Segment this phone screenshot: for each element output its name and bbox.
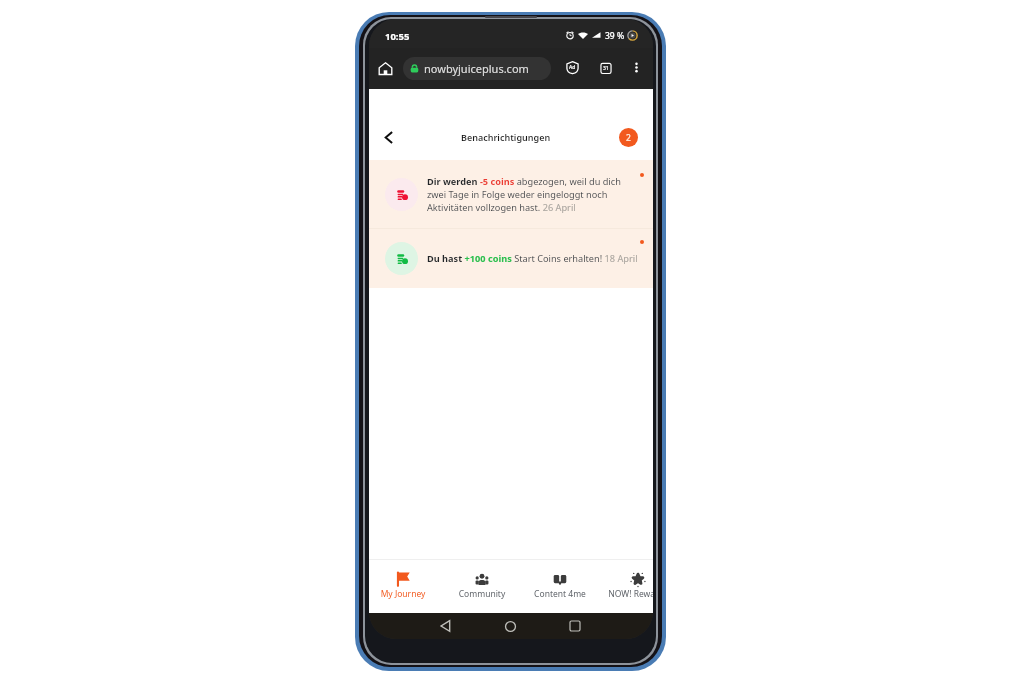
staticText: Dir werden -5 coins abgezogen, weil du d… (427, 175, 624, 214)
button[interactable]: Du hast +100 coins Start Coins erhalten!… (369, 229, 653, 288)
staticText: 39 % (605, 30, 625, 42)
button[interactable]: My Journey (369, 560, 442, 613)
staticText: NOW! Rewards (599, 588, 653, 600)
staticText: 10:55 (385, 30, 410, 43)
staticText: Ad (569, 64, 576, 71)
staticText: Du hast +100 coins Start Coins erhalten!… (427, 252, 643, 265)
button[interactable]: nowbyjuiceplus.com (403, 57, 551, 80)
staticText: Benachrichtigungen (461, 131, 551, 143)
button[interactable]: Ad blocker (562, 57, 583, 78)
staticText: Community (443, 588, 521, 600)
staticText: nowbyjuiceplus.com (424, 61, 529, 76)
button[interactable]: Back (434, 615, 456, 637)
button[interactable]: Content 4me (521, 560, 599, 613)
button[interactable]: Community (443, 560, 521, 613)
button[interactable]: More options (626, 57, 647, 78)
button[interactable]: Calendar (595, 57, 616, 78)
staticText: 2 (626, 132, 631, 144)
button[interactable]: Dir werden -5 coins abgezogen, weil du d… (369, 160, 653, 228)
button[interactable]: Home (374, 57, 397, 80)
button[interactable]: NOW! Rewards (599, 560, 653, 613)
staticText: Content 4me (521, 588, 599, 600)
button[interactable]: Home (499, 615, 521, 637)
staticText: 31 (603, 65, 609, 72)
button[interactable]: 2 (619, 128, 638, 147)
button[interactable]: Back (376, 125, 400, 149)
button[interactable]: Recent apps (564, 615, 586, 637)
staticText: My Journey (369, 588, 442, 600)
